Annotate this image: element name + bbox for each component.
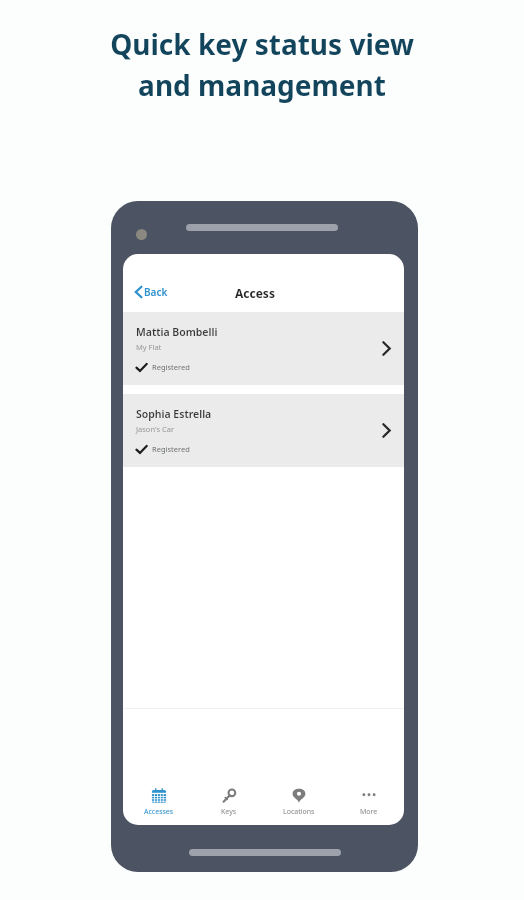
staticText: Keys bbox=[221, 807, 237, 817]
staticText: Back bbox=[144, 285, 168, 299]
staticText: Registered bbox=[152, 444, 190, 454]
button[interactable]: Mattia Bombelli bbox=[123, 312, 404, 385]
staticText: Sophia Estrella bbox=[136, 407, 212, 421]
button[interactable]: Back bbox=[123, 280, 180, 304]
staticText: Access bbox=[235, 285, 275, 301]
staticText: More bbox=[360, 807, 378, 817]
staticText: Registered bbox=[152, 362, 190, 372]
staticText: Quick key status view bbox=[110, 25, 414, 63]
button[interactable]: More bbox=[334, 779, 404, 825]
staticText: and management bbox=[138, 66, 386, 104]
button[interactable]: Accesses bbox=[123, 779, 194, 825]
staticText: My Flat bbox=[136, 342, 162, 352]
staticText: Locations bbox=[283, 807, 315, 817]
staticText: Mattia Bombelli bbox=[136, 325, 218, 339]
staticText: Accesses bbox=[144, 807, 174, 817]
button[interactable]: Keys bbox=[194, 779, 264, 825]
button[interactable]: Locations bbox=[264, 779, 334, 825]
staticText: Jason's Car bbox=[136, 424, 174, 434]
button[interactable]: Sophia Estrella bbox=[123, 394, 404, 467]
